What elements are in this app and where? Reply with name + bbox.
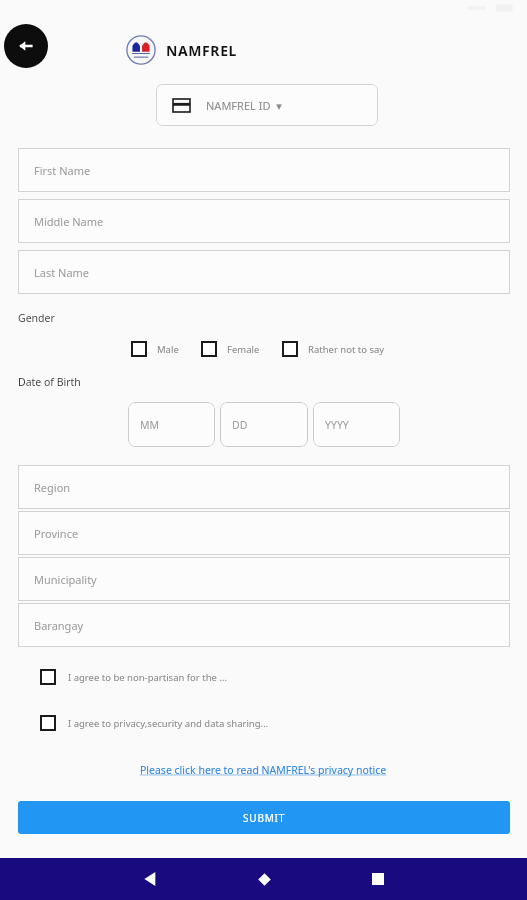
button[interactable]: Rather not to say — [282, 339, 385, 359]
staticText: Barangay — [34, 618, 84, 633]
staticText: First Name — [34, 163, 91, 178]
button[interactable]: Province — [18, 511, 510, 555]
button[interactable]: Barangay — [18, 603, 510, 647]
button[interactable]: Male — [131, 339, 179, 359]
staticText: Province — [34, 526, 79, 541]
staticText: Municipality — [34, 572, 97, 587]
staticText: Region — [34, 480, 71, 495]
staticText: MM — [140, 418, 160, 432]
button[interactable]: Recent apps — [352, 858, 404, 900]
staticText: NAMFREL — [166, 41, 238, 60]
staticText: YYYY — [325, 418, 349, 432]
staticText: Please click here to read NAMFREL's priv… — [140, 763, 387, 777]
staticText: Female — [227, 343, 260, 356]
button[interactable]: Female — [201, 339, 260, 359]
button[interactable]: MM — [128, 402, 215, 447]
staticText: I agree to privacy,security and data sha… — [68, 717, 269, 730]
staticText: Gender — [18, 311, 55, 325]
button[interactable]: Back — [124, 858, 176, 900]
button[interactable]: NAMFREL ID ▾ — [156, 84, 378, 126]
staticText: Rather not to say — [308, 343, 385, 356]
button[interactable]: I agree to privacy,security and data sha… — [40, 713, 527, 733]
button[interactable]: Last Name — [18, 250, 510, 294]
staticText: DD — [232, 418, 248, 432]
button[interactable]: Back — [4, 24, 48, 68]
button[interactable]: Municipality — [18, 557, 510, 601]
button[interactable]: Middle Name — [18, 199, 510, 243]
button[interactable]: Region — [18, 465, 510, 509]
staticText: I agree to be non-partisan for the ... — [68, 671, 228, 684]
staticText: Last Name — [34, 265, 90, 280]
button[interactable]: Please click here to read NAMFREL's priv… — [136, 761, 391, 779]
button[interactable]: First Name — [18, 148, 510, 192]
staticText: SUBMIT — [243, 811, 286, 825]
button[interactable]: I agree to be non-partisan for the ... — [40, 667, 527, 687]
staticText: Date of Birth — [18, 375, 81, 389]
staticText: NAMFREL ID ▾ — [206, 98, 282, 113]
staticText: Male — [157, 343, 179, 356]
button[interactable]: SUBMIT — [18, 801, 510, 834]
staticText: Middle Name — [34, 214, 104, 229]
button[interactable]: YYYY — [313, 402, 400, 447]
button[interactable]: DD — [220, 402, 308, 447]
button[interactable]: Home — [238, 858, 290, 900]
